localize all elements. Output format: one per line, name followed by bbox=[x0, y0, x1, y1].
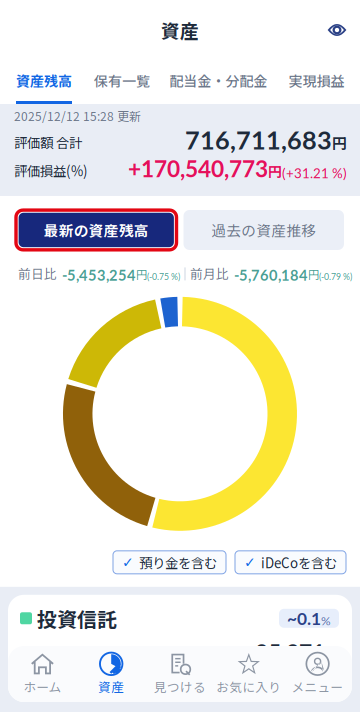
staticText: 過去の資産推移 bbox=[211, 219, 316, 241]
staticText: ✓ bbox=[244, 554, 256, 570]
staticText: 最新の資産残高 bbox=[44, 219, 149, 241]
button[interactable]: 実現損益 bbox=[289, 60, 344, 104]
staticText: 円 bbox=[268, 161, 282, 181]
button[interactable]: 見つける bbox=[146, 643, 214, 705]
staticText: 実現損益 bbox=[288, 70, 344, 91]
button[interactable]: 過去の資産推移 bbox=[183, 210, 344, 250]
staticText: 25,371 bbox=[255, 639, 325, 666]
button[interactable]: ホーム bbox=[8, 643, 77, 705]
staticText: 716,711,683 bbox=[185, 124, 332, 155]
staticText: ホーム bbox=[23, 677, 61, 696]
staticText: 見つける bbox=[154, 677, 206, 696]
staticText: 評価額 合計 bbox=[14, 132, 82, 152]
button[interactable]: 資産 bbox=[77, 643, 146, 705]
staticText: 2025/12/12 15:28 更新 bbox=[14, 107, 141, 124]
button[interactable]: 配当金・分配金 bbox=[172, 60, 265, 104]
staticText: 前月比 bbox=[190, 264, 229, 282]
staticText: -5,453,254 bbox=[62, 266, 136, 284]
button[interactable]: 金額の表示切替 bbox=[314, 10, 360, 49]
staticText: 評価額 合計 bbox=[20, 648, 77, 664]
staticText: 評価損益(%) bbox=[14, 161, 88, 180]
staticText: (-0.75 %) bbox=[147, 271, 180, 282]
staticText: 資産 bbox=[161, 16, 199, 43]
staticText: +170,540,773 bbox=[128, 155, 268, 182]
button[interactable]: メニュー bbox=[283, 643, 352, 705]
staticText: お気に入り bbox=[216, 677, 281, 696]
button[interactable]: 保有一覧 bbox=[96, 60, 148, 104]
button[interactable]: 最新の資産残高 bbox=[16, 210, 176, 250]
staticText: 円 bbox=[308, 266, 319, 282]
button[interactable]: 資産残高 bbox=[16, 60, 72, 104]
staticText: 円 bbox=[332, 132, 347, 153]
staticText: -5,760,184 bbox=[234, 266, 308, 284]
staticText: メニュー bbox=[292, 677, 344, 696]
staticText: (+31.21 %) bbox=[282, 165, 347, 181]
staticText: 円 bbox=[325, 645, 339, 665]
staticText: % bbox=[321, 613, 331, 628]
staticText: 前日比 bbox=[18, 264, 57, 282]
staticText: 保有一覧 bbox=[94, 70, 150, 91]
staticText: 円 bbox=[136, 266, 147, 282]
button[interactable]: ✓ bbox=[113, 551, 226, 574]
staticText: 預り金を含む bbox=[139, 553, 217, 572]
staticText: 投資信託 bbox=[37, 604, 117, 633]
staticText: ~0.1 bbox=[287, 608, 321, 629]
button[interactable]: お気に入り bbox=[214, 643, 283, 705]
staticText: (-0.79 %) bbox=[319, 271, 352, 282]
button[interactable]: ✓ bbox=[235, 551, 346, 574]
staticText: iDeCoを含む bbox=[261, 553, 337, 572]
staticText: 資産残高 bbox=[16, 70, 72, 91]
staticText: 配当金・分配金 bbox=[169, 70, 267, 91]
staticText: 資産 bbox=[98, 677, 124, 696]
staticText: ✓ bbox=[122, 554, 134, 570]
